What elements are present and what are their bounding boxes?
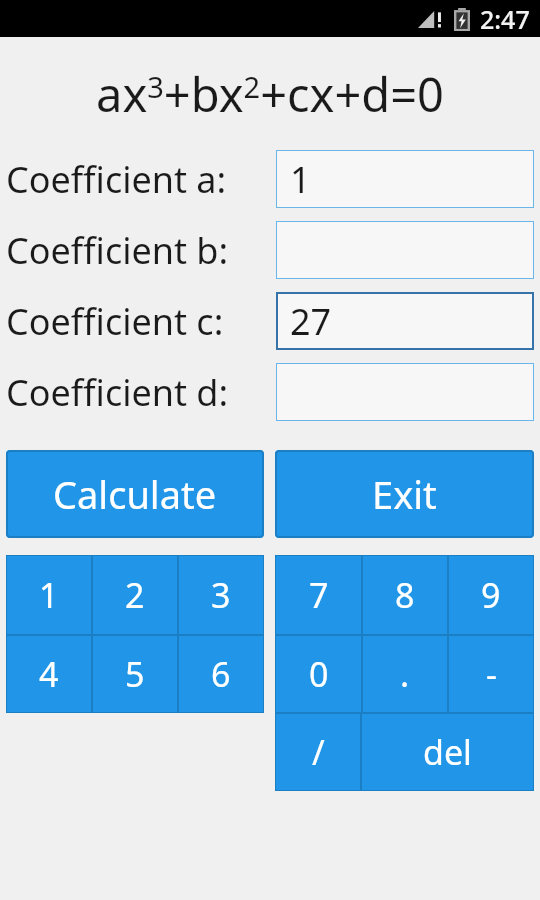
button[interactable]: 7 [275, 555, 362, 635]
staticText: 2 [125, 572, 145, 618]
staticText: 1 [290, 155, 311, 204]
button[interactable]: 6 [178, 635, 264, 713]
button[interactable]: 1 [276, 150, 534, 208]
button[interactable] [276, 363, 534, 421]
staticText: 8 [395, 572, 415, 618]
staticText: 9 [481, 572, 501, 618]
staticText: 3 [211, 572, 231, 618]
button[interactable]: 3 [178, 555, 264, 635]
button[interactable]: 9 [448, 555, 534, 635]
staticText: Exit [372, 468, 437, 520]
staticText: Coefficient d: [6, 368, 229, 417]
staticText: 4 [39, 651, 59, 697]
staticText: Calculate [53, 468, 217, 520]
button[interactable]: 8 [362, 555, 448, 635]
staticText: Coefficient c: [6, 297, 224, 346]
staticText: del [423, 729, 472, 775]
button[interactable]: 2 [92, 555, 178, 635]
button[interactable]: 27 [276, 292, 534, 350]
staticText: 2:47 [480, 2, 530, 36]
staticText: / [312, 729, 325, 775]
button[interactable]: Calculate [6, 450, 264, 538]
button[interactable]: 0 [275, 635, 362, 713]
button[interactable]: 5 [92, 635, 178, 713]
button[interactable]: 1 [6, 555, 92, 635]
staticText: 0 [309, 651, 329, 697]
staticText: 6 [211, 651, 231, 697]
staticText: 7 [309, 572, 329, 618]
staticText: Coefficient a: [6, 155, 227, 204]
button[interactable]: - [448, 635, 534, 713]
staticText: Coefficient b: [6, 226, 229, 275]
button[interactable]: . [362, 635, 448, 713]
staticText: 27 [290, 297, 332, 346]
staticText: - [486, 651, 497, 697]
staticText: 5 [125, 651, 145, 697]
button[interactable]: del [361, 713, 534, 791]
button[interactable]: / [275, 713, 361, 791]
button[interactable] [276, 221, 534, 279]
staticText: ax3+bx2+cx+d=0 [96, 62, 444, 126]
button[interactable]: 4 [6, 635, 92, 713]
button[interactable]: Exit [275, 450, 534, 538]
staticText: . [400, 651, 410, 697]
staticText: 1 [39, 572, 59, 618]
